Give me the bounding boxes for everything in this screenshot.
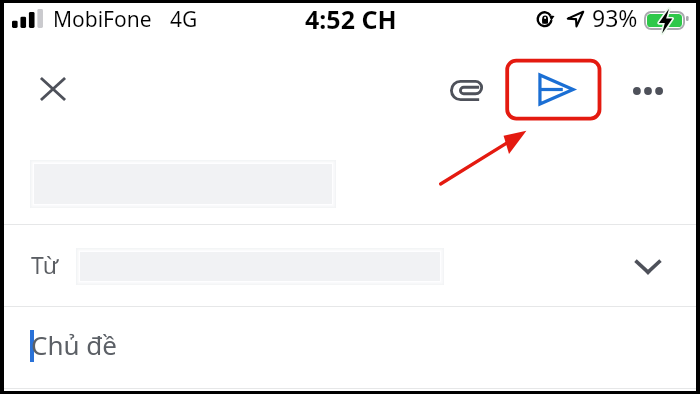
staticText: 4G (170, 5, 198, 34)
button[interactable]: Expand recipients (622, 242, 674, 292)
button[interactable]: Send (522, 59, 590, 119)
button[interactable]: More options (622, 65, 674, 117)
button[interactable]: Close (27, 59, 79, 118)
staticText: Từ (31, 249, 59, 280)
staticText: Chủ đề (31, 327, 118, 362)
staticText: 93% (592, 2, 638, 33)
button[interactable]: Chủ đề (4, 307, 696, 387)
button[interactable]: Từ (4, 227, 696, 306)
button[interactable]: Attach file (434, 62, 502, 118)
staticText: 4:52 CH (305, 2, 397, 36)
staticText: MobiFone (53, 5, 152, 34)
button[interactable] (4, 128, 696, 226)
